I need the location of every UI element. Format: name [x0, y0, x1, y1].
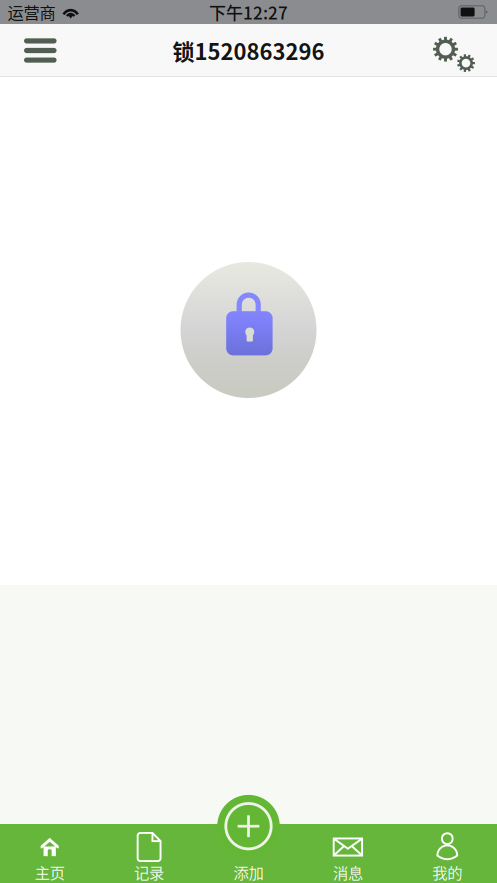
button[interactable]: 我的: [398, 824, 497, 883]
staticText: 添加: [233, 861, 263, 883]
staticText: 运营商: [7, 0, 55, 24]
staticText: 下午12:27: [209, 0, 288, 24]
staticText: 主页: [35, 861, 65, 883]
button[interactable]: 消息: [298, 824, 398, 883]
staticText: 锁1520863296: [172, 35, 324, 66]
button[interactable]: Add: [217, 795, 280, 857]
button[interactable]: Menu: [12, 24, 68, 77]
button[interactable]: 添加: [199, 824, 298, 883]
button[interactable]: Settings: [427, 31, 485, 84]
staticText: 消息: [333, 861, 363, 883]
button[interactable]: 主页: [0, 824, 99, 883]
staticText: 记录: [134, 861, 164, 883]
staticText: 我的: [432, 861, 462, 883]
button[interactable]: 记录: [99, 824, 199, 883]
